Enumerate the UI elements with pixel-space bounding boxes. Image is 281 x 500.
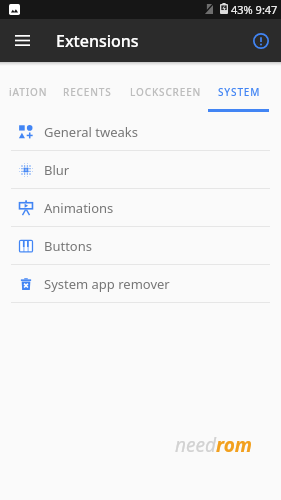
button[interactable]: Buttons	[0, 227, 281, 264]
button[interactable]: Blur	[0, 151, 281, 188]
staticText: SYSTEM	[218, 85, 261, 99]
button[interactable]: RECENTS	[52, 72, 122, 111]
staticText: LOCKSCREEN	[130, 85, 202, 99]
staticText: RECENTS	[63, 85, 112, 99]
staticText: System app remover	[44, 275, 170, 293]
button[interactable]: General tweaks	[0, 113, 281, 150]
staticText: 43% 9:47	[231, 2, 278, 17]
button[interactable]: System app remover	[0, 265, 281, 302]
staticText: iATION	[9, 85, 48, 99]
staticText: General tweaks	[44, 123, 139, 141]
button[interactable]: Animations	[0, 189, 281, 226]
staticText: rom	[216, 432, 252, 458]
button[interactable]: iATION	[0, 72, 61, 111]
staticText: Animations	[44, 199, 114, 217]
button[interactable]: SYSTEM	[208, 72, 270, 111]
staticText: need	[175, 432, 216, 458]
button[interactable]: Open navigation menu	[0, 19, 44, 62]
staticText: Buttons	[44, 237, 92, 255]
button[interactable]: Information	[241, 19, 281, 62]
button[interactable]: LOCKSCREEN	[124, 72, 207, 111]
staticText: Extensions	[56, 30, 139, 52]
staticText: Blur	[44, 161, 70, 179]
